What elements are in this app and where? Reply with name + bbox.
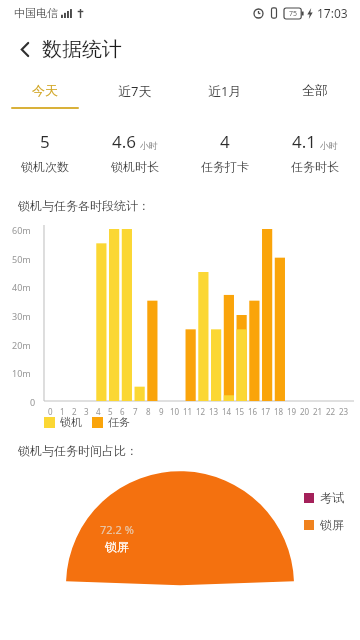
staticText: 全部: [302, 82, 328, 98]
staticText: 19: [287, 406, 297, 417]
staticText: 50m: [12, 253, 31, 265]
staticText: 12: [196, 406, 206, 417]
staticText: 4: [220, 130, 230, 153]
staticText: 40m: [12, 281, 31, 293]
staticText: 7: [133, 406, 138, 417]
staticText: 30m: [12, 310, 31, 322]
staticText: 60m: [12, 224, 31, 236]
staticText: 任务打卡: [201, 159, 249, 174]
staticText: 20m: [12, 339, 31, 351]
staticText: 22: [326, 406, 336, 417]
staticText: 4.1: [292, 130, 317, 153]
staticText: 今天: [32, 82, 58, 98]
staticText: 15: [235, 406, 245, 417]
staticText: 72.2 %: [100, 522, 134, 537]
staticText: 0: [48, 406, 53, 417]
staticText: 18: [274, 406, 284, 417]
staticText: 17: [261, 406, 271, 417]
staticText: 锁机时长: [111, 159, 159, 174]
staticText: 锁屏: [105, 539, 129, 554]
button[interactable]: 近1月: [180, 72, 270, 114]
staticText: 中国电信: [14, 6, 58, 20]
staticText: 数据统计: [42, 37, 122, 62]
button[interactable]: 考试: [304, 490, 344, 505]
button[interactable]: 今天: [0, 72, 90, 114]
staticText: 锁机次数: [21, 159, 69, 174]
staticText: 锁机: [60, 415, 82, 429]
staticText: 17:03: [317, 5, 348, 21]
button[interactable]: 全部: [270, 72, 360, 114]
staticText: 20: [300, 406, 310, 417]
staticText: 任务时长: [291, 159, 339, 174]
staticText: 5: [108, 406, 113, 417]
button[interactable]: 锁屏: [304, 517, 344, 532]
staticText: 21: [313, 406, 323, 417]
staticText: 近7天: [118, 82, 152, 100]
staticText: 1: [60, 406, 65, 417]
staticText: 5: [40, 130, 50, 153]
staticText: 23: [339, 406, 349, 417]
staticText: 锁机与任务各时段统计：: [18, 198, 150, 213]
staticText: 10: [170, 406, 180, 417]
staticText: 6: [120, 406, 125, 417]
staticText: 3: [84, 406, 89, 417]
staticText: 9: [159, 406, 164, 417]
staticText: 75: [289, 9, 298, 19]
staticText: 锁屏: [320, 517, 344, 532]
staticText: 14: [222, 406, 232, 417]
staticText: 2: [72, 406, 77, 417]
staticText: 近1月: [208, 82, 242, 100]
staticText: 0: [30, 396, 36, 408]
staticText: 锁机与任务时间占比：: [18, 443, 138, 458]
button[interactable]: 近7天: [90, 72, 180, 114]
staticText: 16: [248, 406, 258, 417]
staticText: 考试: [320, 490, 344, 505]
staticText: 4.6: [112, 130, 137, 153]
staticText: 10m: [12, 367, 31, 379]
staticText: 任务: [108, 415, 130, 429]
staticText: 小时: [320, 140, 338, 151]
staticText: 4: [96, 406, 101, 417]
button[interactable]: Back: [8, 32, 42, 66]
staticText: 小时: [140, 140, 158, 151]
staticText: 8: [146, 406, 151, 417]
staticText: 11: [183, 406, 193, 417]
staticText: 13: [209, 406, 219, 417]
